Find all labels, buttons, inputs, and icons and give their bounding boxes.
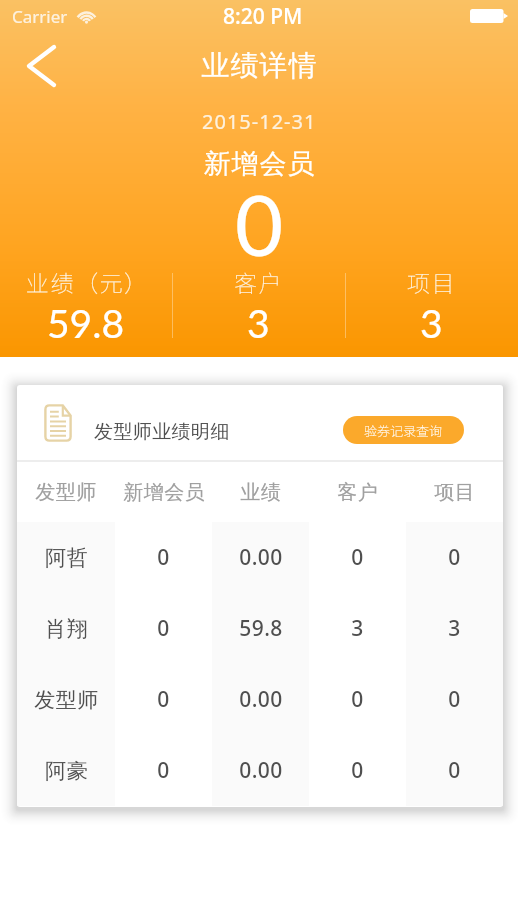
staticText: 0 xyxy=(448,756,461,785)
staticText: 3 xyxy=(351,614,364,643)
staticText: 0 xyxy=(157,756,170,785)
staticText: 0 xyxy=(157,685,170,714)
button[interactable]: 0 xyxy=(406,664,503,735)
staticText: 阿哲 xyxy=(45,545,88,571)
button[interactable]: 肖翔 xyxy=(17,593,115,664)
button[interactable]: 0 xyxy=(406,522,503,593)
staticText: 0 xyxy=(448,685,461,714)
button[interactable]: 验券记录查询 xyxy=(343,416,464,444)
staticText: 项目 xyxy=(407,265,457,298)
button[interactable]: 阿哲 xyxy=(17,522,115,593)
staticText: 8:20 PM xyxy=(223,2,303,31)
button[interactable]: 阿豪 xyxy=(17,735,115,806)
staticText: 0 xyxy=(157,543,170,572)
button[interactable]: 3 xyxy=(309,593,406,664)
button[interactable]: 0 xyxy=(115,735,212,806)
button[interactable]: 业绩（元） xyxy=(0,263,172,343)
staticText: 发型师 xyxy=(34,687,99,713)
staticText: 新增会员 xyxy=(123,480,205,505)
button[interactable]: 0 xyxy=(309,664,406,735)
staticText: 59.8 xyxy=(239,614,283,643)
button[interactable]: 新增会员 xyxy=(115,462,212,522)
staticText: 验券记录查询 xyxy=(364,421,443,440)
button[interactable]: 项目 xyxy=(406,462,503,522)
button[interactable]: 59.8 xyxy=(212,593,309,664)
button[interactable]: 0 xyxy=(115,522,212,593)
staticText: 客户 xyxy=(234,265,284,298)
staticText: 3 xyxy=(420,300,443,343)
button[interactable]: 0 xyxy=(309,735,406,806)
staticText: Carrier xyxy=(12,5,68,28)
staticText: 发型师 xyxy=(35,480,97,505)
button[interactable]: 业绩 xyxy=(212,462,309,522)
staticText: 0.00 xyxy=(239,685,283,714)
staticText: 发型师业绩明细 xyxy=(94,420,230,444)
button[interactable]: 0 xyxy=(406,735,503,806)
staticText: 0.00 xyxy=(239,543,283,572)
staticText: 0.00 xyxy=(239,756,283,785)
staticText: 新增会员 xyxy=(203,147,315,181)
staticText: 0 xyxy=(351,756,364,785)
button[interactable]: 客户 xyxy=(309,462,406,522)
staticText: 3 xyxy=(448,614,461,643)
button[interactable]: 0.00 xyxy=(212,735,309,806)
staticText: 0 xyxy=(448,543,461,572)
button[interactable]: 发型师 xyxy=(17,664,115,735)
staticText: 项目 xyxy=(434,480,475,505)
staticText: 3 xyxy=(247,300,270,343)
staticText: 阿豪 xyxy=(45,758,88,784)
button[interactable]: 0 xyxy=(115,593,212,664)
button[interactable]: Back xyxy=(11,36,71,96)
staticText: 0 xyxy=(351,685,364,714)
button[interactable]: 0.00 xyxy=(212,522,309,593)
button[interactable]: 3 xyxy=(406,593,503,664)
staticText: 业绩（元） xyxy=(25,265,148,298)
staticText: 0 xyxy=(235,174,284,274)
button[interactable]: 0.00 xyxy=(212,664,309,735)
staticText: 59.8 xyxy=(47,300,125,343)
staticText: 0 xyxy=(351,543,364,572)
button[interactable]: 0 xyxy=(309,522,406,593)
staticText: 客户 xyxy=(337,480,378,505)
button[interactable]: 0 xyxy=(115,664,212,735)
button[interactable]: 发型师 xyxy=(17,462,115,522)
button[interactable]: 客户 xyxy=(172,263,345,343)
staticText: 业绩详情 xyxy=(201,48,317,83)
button[interactable]: 项目 xyxy=(345,263,518,343)
staticText: 业绩 xyxy=(240,480,281,505)
staticText: 肖翔 xyxy=(45,616,88,642)
staticText: 2015-12-31 xyxy=(202,108,317,135)
staticText: 0 xyxy=(157,614,170,643)
